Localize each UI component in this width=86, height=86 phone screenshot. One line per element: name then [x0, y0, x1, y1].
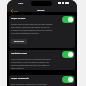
button[interactable]: Enable Screenshots — [9, 75, 75, 86]
staticText: Nightstand Mode — [11, 52, 28, 55]
staticText: Enable Screenshots — [11, 77, 29, 80]
staticText: Handoff lets you move what you are doing… — [11, 23, 53, 25]
button[interactable]: Enable Handoff toggle — [62, 16, 74, 23]
staticText: table it rests on. — [11, 67, 24, 69]
button[interactable]: Enable Screenshots toggle — [62, 76, 74, 83]
staticText: 10:08 — [18, 2, 24, 5]
button[interactable]: Nightstand Mode — [9, 50, 75, 70]
staticText: it is charging. It turns the display sid… — [11, 61, 49, 63]
staticText: your devices, picking up right where you… — [11, 26, 50, 28]
staticText: General — [37, 9, 45, 12]
staticText: Back — [14, 10, 18, 12]
staticText: the screen gently lights up when you nud… — [11, 64, 50, 66]
staticText: You can use Apple Watch as a bedside clo… — [11, 58, 51, 60]
button[interactable]: Nightstand Mode toggle — [62, 51, 74, 58]
button[interactable]: Enable Handoff — [9, 15, 75, 48]
button[interactable]: Back — [10, 9, 18, 13]
staticText: Return to Clock — [14, 41, 24, 43]
button[interactable]: Return to Clock — [11, 39, 27, 44]
staticText: It appears on the app switcher so you ca… — [11, 29, 53, 31]
staticText: Enable Handoff — [11, 17, 26, 20]
staticText: When the watch is connected, you can tak… — [11, 83, 48, 85]
staticText: in a single tap whenever you want. — [11, 32, 39, 34]
